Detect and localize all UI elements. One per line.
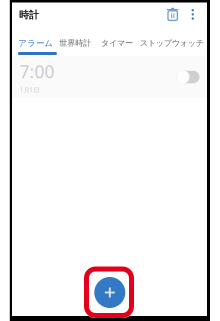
staticText: タイマー <box>101 38 133 48</box>
staticText: ストップウォッチ <box>140 38 204 48</box>
button[interactable]: 7:00 <box>12 2 207 44</box>
staticText: 1月1日 <box>19 85 39 94</box>
button[interactable]: 世界時計 <box>12 2 44 20</box>
button[interactable]: More options <box>12 2 26 25</box>
staticText: 時計 <box>19 9 39 21</box>
staticText: アラーム <box>18 38 53 49</box>
button[interactable]: Delete alarms <box>12 2 33 25</box>
button[interactable]: Add alarm <box>0 0 31 31</box>
button[interactable]: タイマー <box>12 2 44 20</box>
button[interactable]: アラーム <box>12 2 47 20</box>
button[interactable]: ストップウォッチ <box>12 2 76 20</box>
staticText: 7:00 <box>19 60 54 83</box>
staticText: 世界時計 <box>59 38 91 48</box>
